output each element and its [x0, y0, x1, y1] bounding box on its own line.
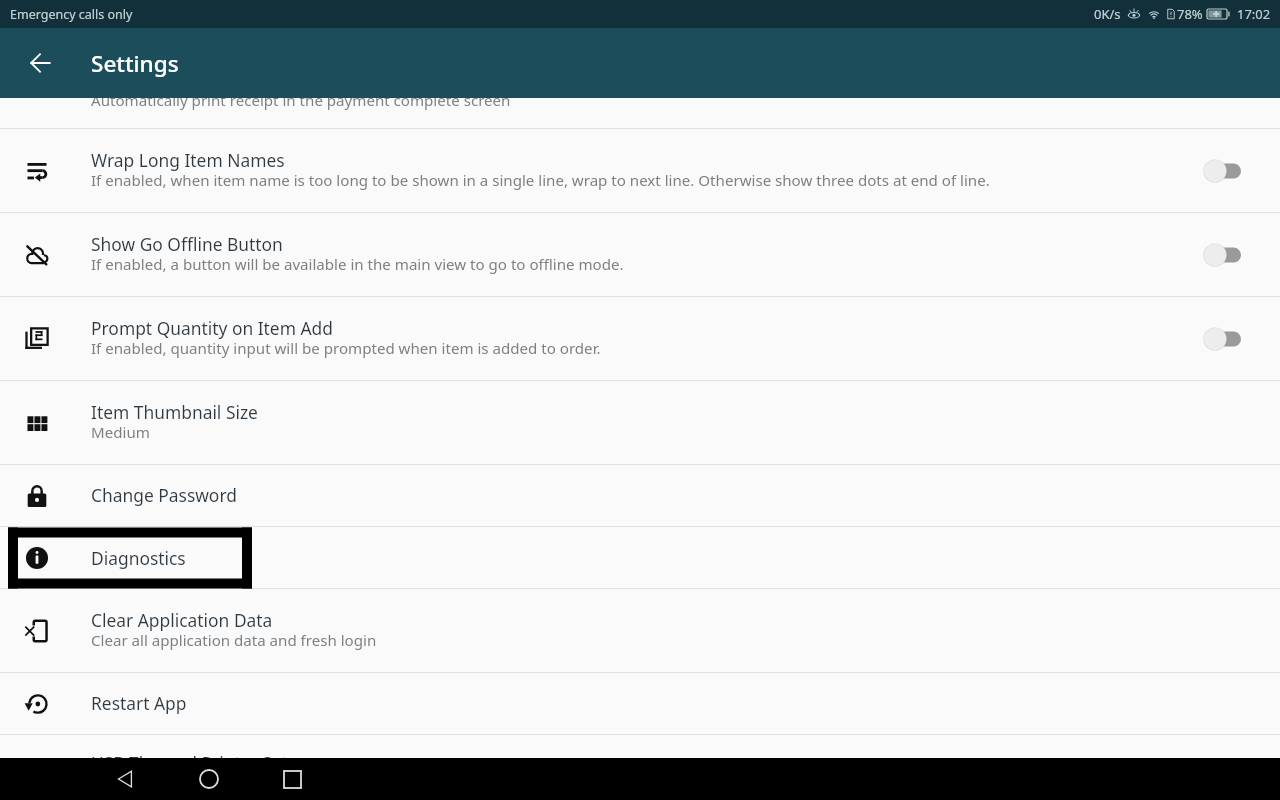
staticText: Emergency calls only	[10, 6, 133, 23]
staticText: USB Thermal Printer Setup	[91, 751, 310, 758]
button[interactable]: Change Password	[0, 465, 1280, 527]
button[interactable]: Item Thumbnail Size	[0, 381, 1280, 465]
button[interactable]: Toggle	[1201, 239, 1253, 271]
staticText: Clear all application data and fresh log…	[91, 630, 377, 651]
button[interactable]: Back	[17, 39, 65, 87]
staticText: Clear Application Data	[91, 608, 273, 632]
staticText: Item Thumbnail Size	[91, 400, 258, 424]
button[interactable]: Prompt Quantity on Item Add	[0, 297, 1280, 381]
staticText: If enabled, a button will be available i…	[91, 254, 624, 275]
staticText: 0K/s	[1094, 5, 1121, 23]
button[interactable]: Recents	[271, 758, 313, 800]
staticText: Wrap Long Item Names	[91, 148, 285, 172]
button[interactable]: Clear Application Data	[0, 589, 1280, 673]
staticText: Diagnostics	[91, 546, 186, 570]
button[interactable]: Show Go Offline Button	[0, 213, 1280, 297]
staticText: Show Go Offline Button	[91, 232, 283, 256]
staticText: Restart App	[91, 691, 187, 715]
staticText: If enabled, quantity input will be promp…	[91, 338, 601, 359]
button[interactable]: Toggle	[1201, 155, 1253, 187]
button[interactable]: Wrap Long Item Names	[0, 129, 1280, 213]
button[interactable]: Restart App	[0, 673, 1280, 735]
staticText: 17:02	[1237, 5, 1271, 23]
staticText: Medium	[91, 422, 150, 443]
button[interactable]: Diagnostics	[0, 527, 1280, 589]
button[interactable]: Back	[105, 758, 147, 800]
button[interactable]: Home	[188, 758, 230, 800]
staticText: Settings	[91, 48, 179, 79]
staticText: Prompt Quantity on Item Add	[91, 316, 333, 340]
button[interactable]: Toggle	[1201, 323, 1253, 355]
staticText: 78%	[1177, 5, 1203, 23]
staticText: Automatically print receipt in the payme…	[91, 98, 511, 111]
button[interactable]: USB Thermal Printer Setup	[0, 735, 1280, 758]
staticText: Change Password	[91, 483, 237, 507]
staticText: If enabled, when item name is too long t…	[91, 170, 990, 191]
